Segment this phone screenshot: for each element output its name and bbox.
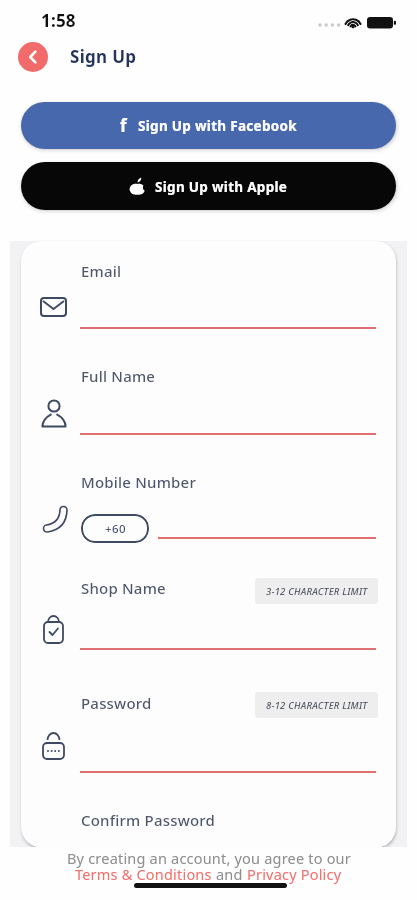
- button[interactable]: +60: [81, 514, 149, 543]
- staticText: f: [120, 114, 127, 137]
- staticText: Sign Up: [70, 45, 137, 68]
- button[interactable]: Terms & Conditions: [75, 864, 212, 884]
- staticText: 3-12 CHARACTER LIMIT: [266, 585, 368, 598]
- staticText: and: [212, 864, 247, 884]
- staticText: By creating an account, you agree to our: [67, 848, 351, 868]
- staticText: Password: [81, 693, 152, 713]
- staticText: 1:58: [41, 9, 76, 32]
- staticText: Mobile Number: [81, 472, 196, 492]
- staticText: Full Name: [81, 366, 156, 386]
- staticText: Sign Up with Apple: [155, 178, 288, 196]
- button[interactable]: f: [21, 102, 396, 149]
- staticText: 8-12 CHARACTER LIMIT: [266, 699, 368, 712]
- staticText: Confirm Password: [81, 810, 216, 830]
- button[interactable]: Privacy Policy: [247, 864, 342, 884]
- staticText: +60: [105, 521, 126, 537]
- button[interactable]: Sign Up with Apple: [21, 162, 396, 210]
- button[interactable]: [18, 42, 48, 72]
- staticText: Email: [81, 261, 122, 281]
- staticText: Shop Name: [81, 578, 166, 598]
- staticText: Sign Up with Facebook: [138, 117, 297, 135]
